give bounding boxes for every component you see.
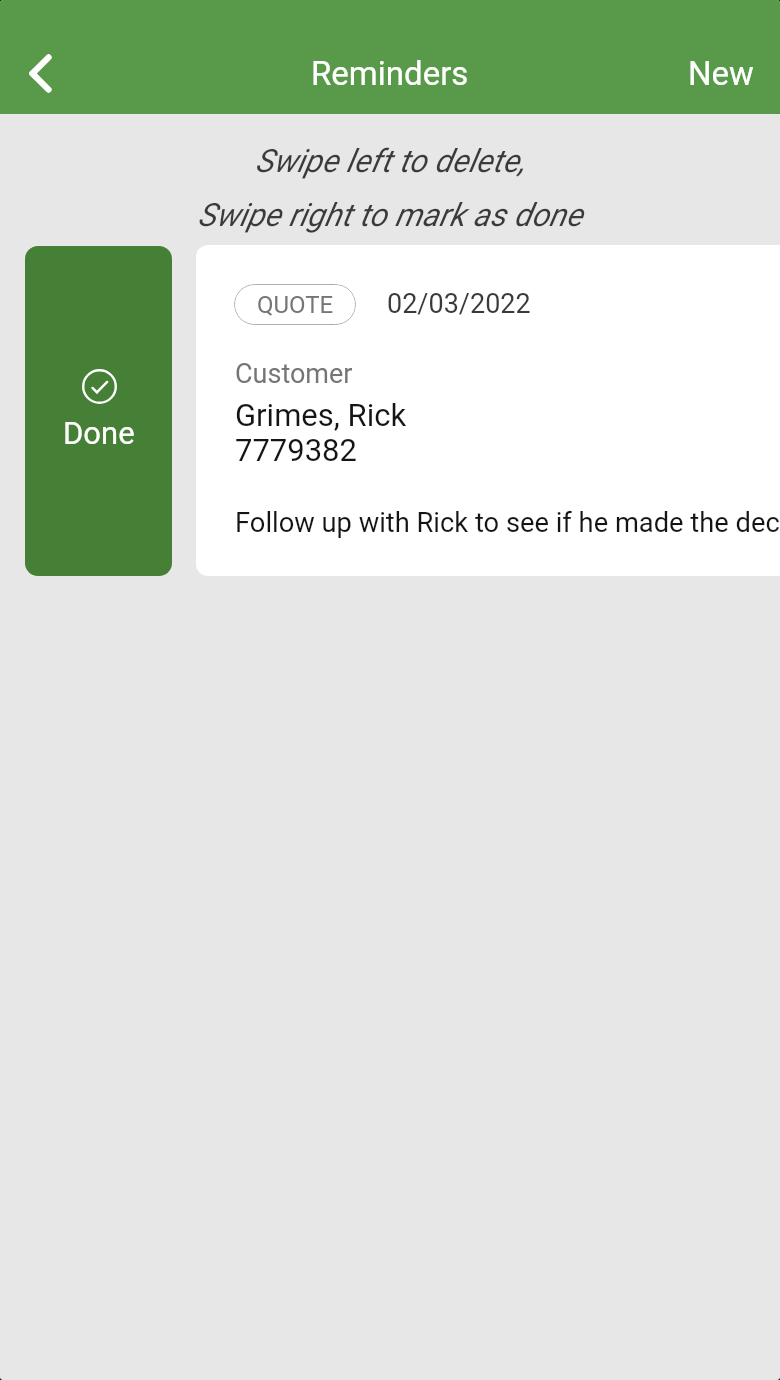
staticText: 02/03/2022 (387, 288, 531, 320)
button[interactable]: QUOTE (196, 245, 780, 576)
staticText: Done (63, 415, 135, 451)
button[interactable]: New (660, 32, 780, 114)
staticText: Swipe left to delete, (0, 142, 780, 180)
staticText: Follow up with Rick to see if he made th… (235, 507, 780, 539)
staticText: Customer (235, 358, 353, 390)
staticText: Grimes, Rick 7779382 (235, 397, 407, 468)
button[interactable]: Done (25, 246, 172, 576)
staticText: Swipe right to mark as done (0, 196, 780, 234)
staticText: QUOTE (257, 291, 334, 319)
staticText: New (688, 54, 754, 93)
staticText: Reminders (311, 54, 469, 93)
button[interactable]: Back (0, 32, 78, 114)
